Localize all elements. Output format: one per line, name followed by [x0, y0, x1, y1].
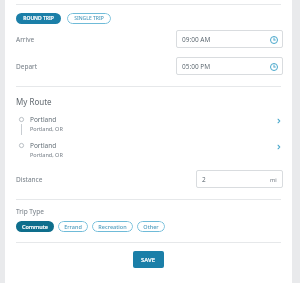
staticText: 2 — [202, 175, 206, 184]
staticText: SINGLE TRIP — [74, 15, 104, 22]
staticText: Recreation — [98, 223, 127, 230]
staticText: Portland — [30, 141, 57, 150]
staticText: Depart — [16, 62, 38, 71]
button[interactable]: ROUND TRIP — [16, 13, 61, 24]
staticText: mi — [270, 176, 277, 183]
staticText: Portland, OR — [30, 125, 63, 132]
staticText: Arrive — [16, 35, 35, 44]
staticText: Commute — [22, 223, 48, 230]
staticText: Errand — [64, 223, 82, 230]
staticText: My Route — [16, 96, 52, 107]
staticText: 09:00 AM — [182, 35, 211, 44]
button[interactable]: 2 — [196, 170, 283, 188]
button[interactable]: Portland — [16, 115, 283, 135]
button[interactable]: 05:00 PM — [176, 57, 283, 75]
button[interactable]: 09:00 AM — [176, 30, 283, 48]
staticText: SAVE — [141, 256, 156, 264]
staticText: ROUND TRIP — [23, 15, 54, 22]
staticText: 05:00 PM — [182, 62, 211, 71]
other: Pick time — [270, 36, 278, 44]
other: Pick time — [270, 63, 278, 71]
button[interactable]: Other — [137, 221, 165, 232]
staticText: Trip Type — [16, 207, 44, 216]
button[interactable]: Commute — [16, 221, 54, 232]
button[interactable]: Recreation — [92, 221, 133, 232]
staticText: Distance — [16, 175, 43, 184]
button[interactable]: Errand — [58, 221, 88, 232]
button[interactable]: SAVE — [133, 251, 164, 268]
button[interactable]: SINGLE TRIP — [67, 13, 111, 24]
staticText: Other — [143, 223, 159, 230]
staticText: Portland, OR — [30, 151, 63, 158]
staticText: Portland — [30, 115, 57, 124]
other: Edit location — [275, 117, 283, 125]
button[interactable]: Portland — [16, 141, 283, 158]
other: Edit location — [275, 143, 283, 151]
